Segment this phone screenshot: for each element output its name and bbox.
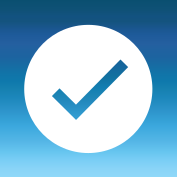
button[interactable]: Completed bbox=[0, 0, 177, 177]
